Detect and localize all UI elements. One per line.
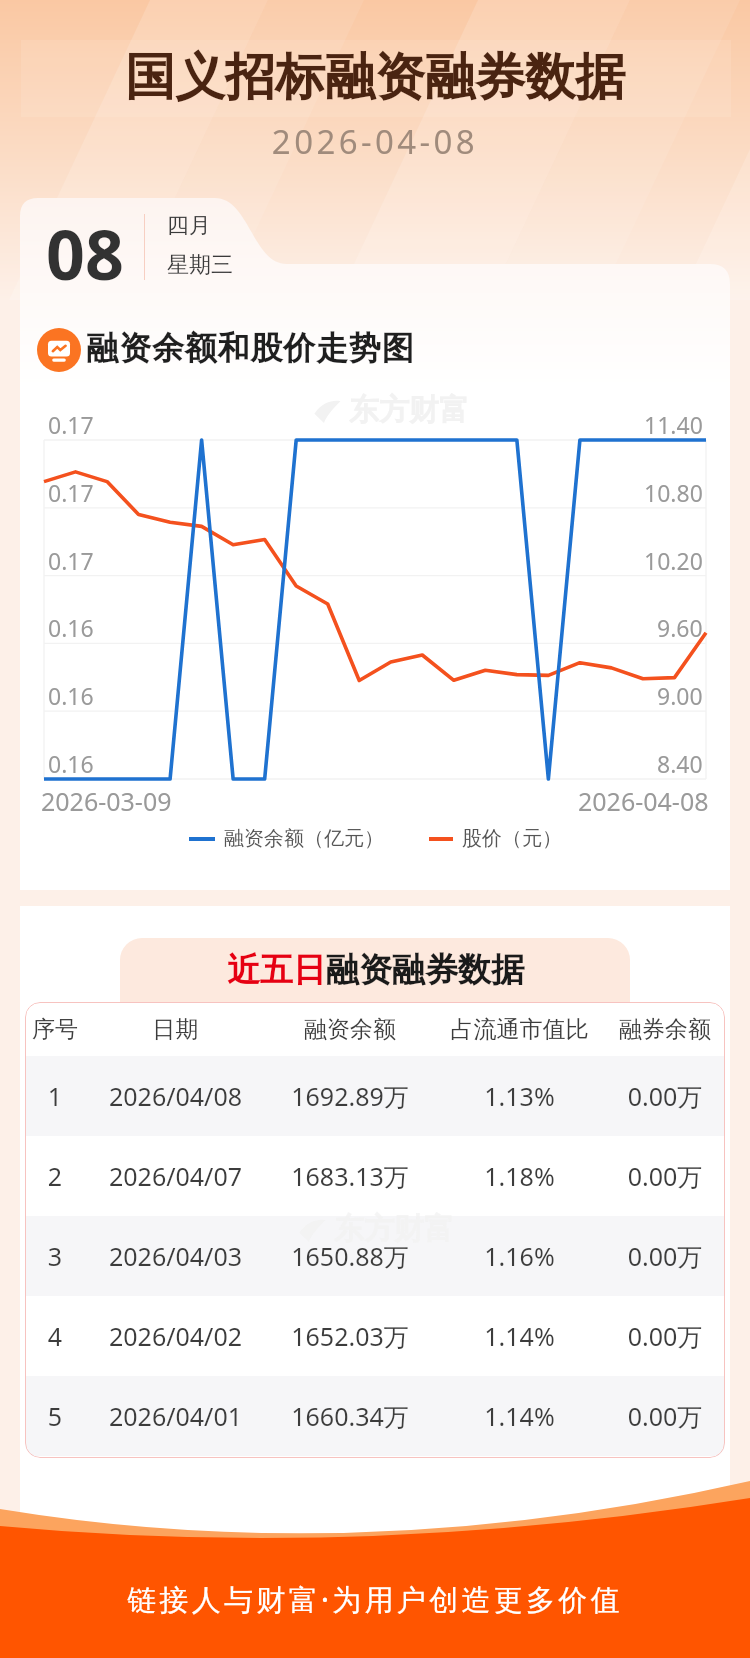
staticText: 2026-03-09: [41, 784, 172, 818]
staticText: 5: [25, 1399, 85, 1433]
staticText: 四月: [167, 212, 211, 240]
staticText: 10.20: [644, 545, 703, 576]
staticText: 1.18%: [434, 1159, 605, 1193]
staticText: 日期: [85, 1015, 266, 1044]
staticText: 1.16%: [434, 1239, 605, 1273]
staticText: 1: [25, 1079, 85, 1113]
staticText: 2: [25, 1159, 85, 1193]
staticText: 股价（元）: [462, 826, 562, 851]
staticText: 08: [46, 207, 124, 300]
staticText: 0.16: [48, 612, 94, 643]
staticText: 9.60: [657, 612, 703, 643]
staticText: 融资融券数据: [326, 949, 524, 991]
staticText: 2026/04/02: [85, 1319, 266, 1353]
staticText: 2026-04-08: [578, 784, 709, 818]
staticText: 星期三: [167, 251, 233, 279]
staticText: 11.40: [644, 409, 703, 440]
other: Chart: [37, 328, 81, 372]
staticText: 0.00万: [605, 1079, 725, 1113]
staticText: 东方财富: [334, 1210, 454, 1248]
staticText: 1.13%: [434, 1079, 605, 1113]
staticText: 4: [25, 1319, 85, 1353]
staticText: 融资余额和股价走势图: [86, 328, 414, 368]
staticText: 东方财富: [349, 391, 469, 429]
staticText: 融资余额（亿元）: [224, 826, 384, 851]
staticText: 2026/04/07: [85, 1159, 266, 1193]
staticText: 0.00万: [605, 1399, 725, 1433]
staticText: 0.17: [48, 477, 94, 508]
staticText: 1650.88万: [266, 1239, 434, 1273]
staticText: 链接人与财富·为用户创造更多价值: [0, 1579, 750, 1619]
staticText: 近五日: [227, 949, 326, 991]
staticText: 3: [25, 1239, 85, 1273]
staticText: 2026-04-08: [0, 119, 750, 164]
staticText: 融资余额: [266, 1015, 434, 1044]
staticText: 0.16: [48, 680, 94, 711]
staticText: 0.00万: [605, 1239, 725, 1273]
staticText: 1683.13万: [266, 1159, 434, 1193]
staticText: 8.40: [657, 748, 703, 779]
staticText: 2026/04/08: [85, 1079, 266, 1113]
staticText: 0.17: [48, 409, 94, 440]
staticText: 10.80: [644, 477, 703, 508]
staticText: 9.00: [657, 680, 703, 711]
staticText: 融券余额: [605, 1015, 725, 1044]
staticText: 2026/04/03: [85, 1239, 266, 1273]
staticText: 1.14%: [434, 1399, 605, 1433]
staticText: 0.00万: [605, 1159, 725, 1193]
staticText: 1660.34万: [266, 1399, 434, 1433]
staticText: 0.00万: [605, 1319, 725, 1353]
staticText: 序号: [25, 1015, 85, 1044]
staticText: 2026/04/01: [85, 1399, 266, 1433]
staticText: 0.17: [48, 545, 94, 576]
staticText: 0.16: [48, 748, 94, 779]
staticText: 占流通市值比: [434, 1015, 605, 1044]
staticText: 国义招标融资融券数据: [0, 46, 750, 109]
staticText: 1652.03万: [266, 1319, 434, 1353]
staticText: 1.14%: [434, 1319, 605, 1353]
staticText: 1692.89万: [266, 1079, 434, 1113]
